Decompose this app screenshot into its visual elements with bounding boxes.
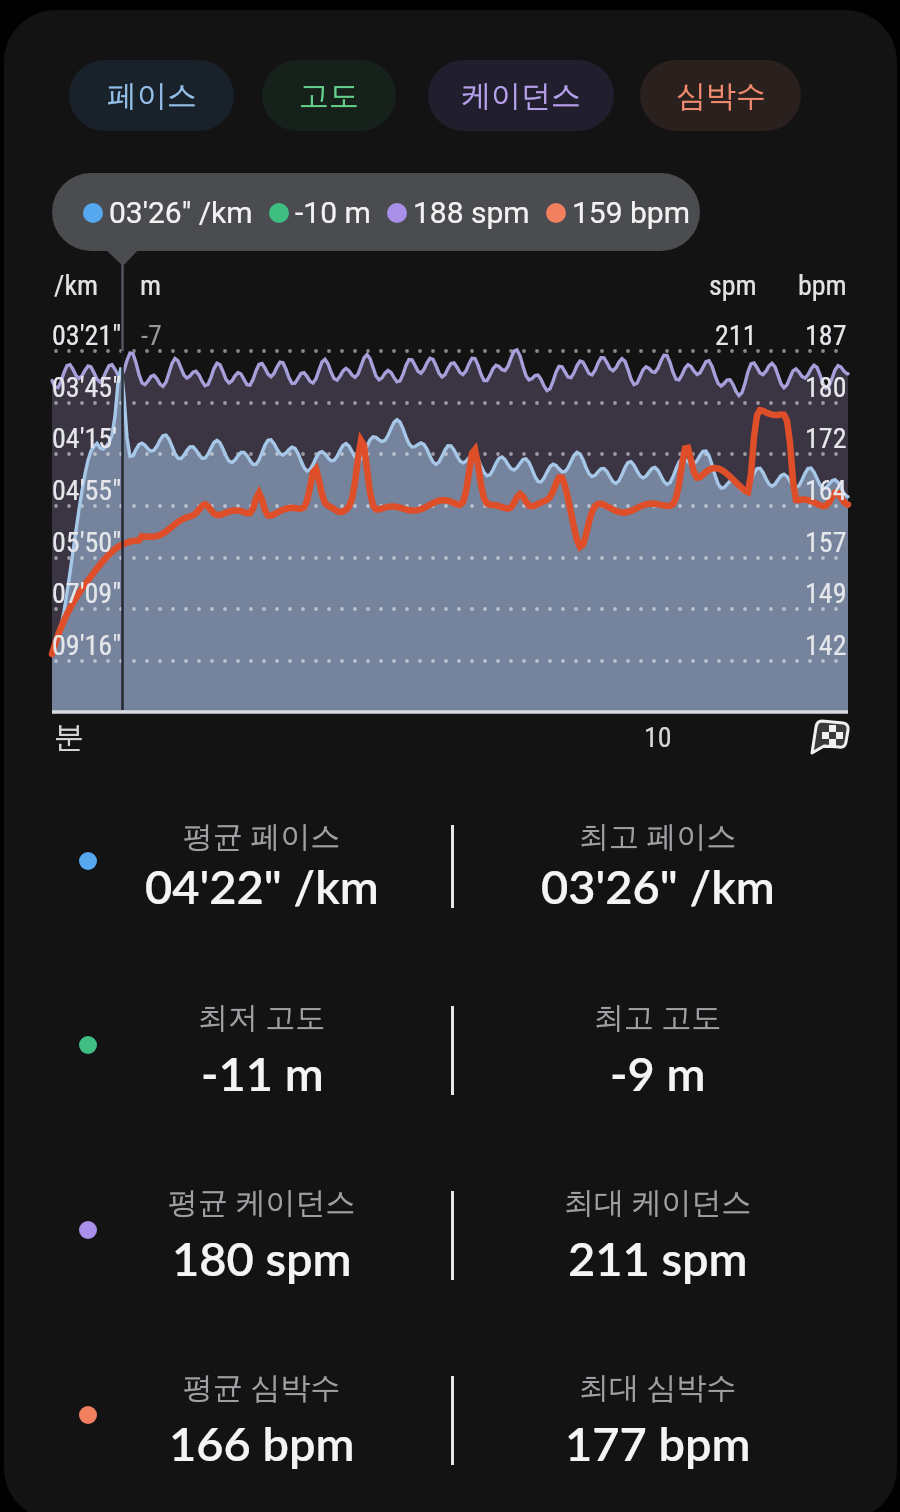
staticText: 172 (805, 422, 847, 455)
staticText: 07'09" (52, 577, 122, 610)
button[interactable]: 고도 (262, 60, 396, 131)
staticText: 149 (805, 577, 847, 610)
staticText: 03'45" (52, 371, 122, 404)
staticText: spm (709, 269, 757, 302)
staticText: 평균 케이던스 (168, 1184, 356, 1222)
staticText: 187 (805, 319, 847, 352)
staticText: -10 m (295, 195, 371, 230)
staticText: 157 (805, 526, 847, 559)
button[interactable]: 케이던스 (428, 60, 614, 131)
staticText: 03'26" /km (541, 858, 775, 914)
staticText: 10 (644, 721, 672, 754)
staticText: 최고 페이스 (579, 818, 737, 856)
staticText: 최대 케이던스 (564, 1184, 752, 1222)
staticText: 03'26" /km (109, 195, 253, 230)
staticText: 188 spm (413, 195, 530, 230)
staticText: 180 (805, 371, 847, 404)
staticText: 05'50" (52, 526, 122, 559)
button[interactable]: 심박수 (640, 60, 801, 131)
staticText: 211 (715, 319, 757, 352)
staticText: 142 (805, 629, 847, 662)
staticText: 04'22" /km (145, 858, 379, 914)
staticText: /km (54, 269, 99, 302)
staticText: 고도 (299, 77, 359, 115)
staticText: -9 m (610, 1045, 706, 1101)
staticText: 166 bpm (169, 1415, 355, 1471)
staticText: 최고 고도 (594, 999, 722, 1037)
staticText: 177 bpm (565, 1415, 751, 1471)
staticText: 159 bpm (572, 195, 691, 230)
staticText: 평균 심박수 (183, 1369, 341, 1407)
staticText: 페이스 (107, 77, 197, 115)
staticText: 최저 고도 (198, 999, 326, 1037)
staticText: m (140, 269, 162, 302)
staticText: 09'16" (52, 629, 122, 662)
staticText: 03'21" (52, 319, 122, 352)
staticText: -11 m (201, 1045, 324, 1101)
staticText: 케이던스 (461, 77, 581, 115)
staticText: 분 (54, 718, 84, 756)
staticText: 164 (805, 474, 847, 507)
staticText: 211 spm (568, 1230, 748, 1286)
staticText: -7 (141, 319, 162, 352)
staticText: bpm (798, 269, 847, 302)
staticText: 04'55" (52, 474, 122, 507)
button[interactable]: 페이스 (69, 60, 234, 131)
staticText: 04'15' (52, 422, 118, 455)
staticText: 180 spm (172, 1230, 352, 1286)
staticText: 심박수 (676, 77, 766, 115)
staticText: 최대 심박수 (579, 1369, 737, 1407)
staticText: 평균 페이스 (183, 818, 341, 856)
